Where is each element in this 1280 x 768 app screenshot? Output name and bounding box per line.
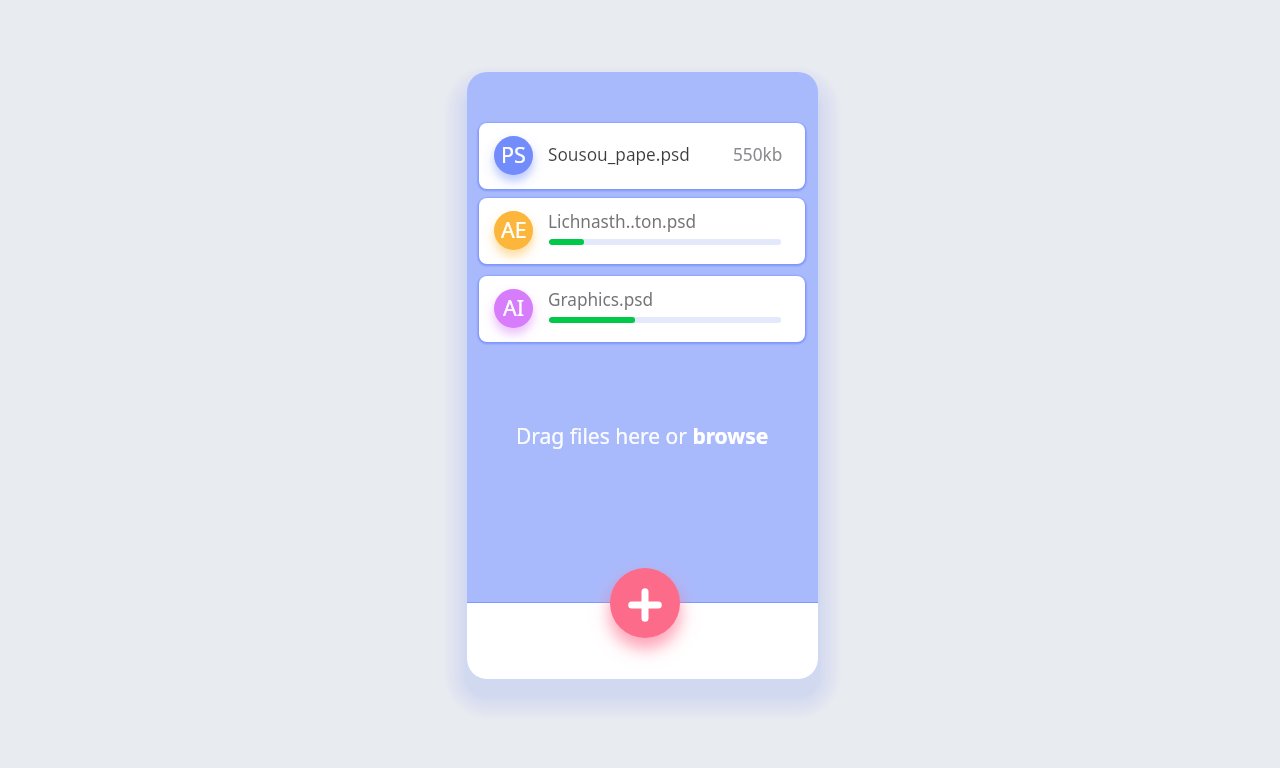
staticText: Sousou_pape.psd <box>548 143 690 166</box>
staticText: Drag files here or browse <box>516 422 769 451</box>
staticText: PS <box>501 140 526 169</box>
staticText: Graphics.psd <box>548 288 653 311</box>
button[interactable]: Drag files here or browse <box>467 421 818 451</box>
staticText: AE <box>501 215 527 244</box>
button[interactable]: Add file <box>610 568 680 638</box>
button[interactable]: AE <box>479 198 805 264</box>
staticText: Lichnasth..ton.psd <box>548 210 697 233</box>
staticText: 550kb <box>733 143 783 166</box>
staticText: AI <box>503 293 525 322</box>
button[interactable]: PS <box>479 123 805 189</box>
button[interactable]: AI <box>479 276 805 342</box>
